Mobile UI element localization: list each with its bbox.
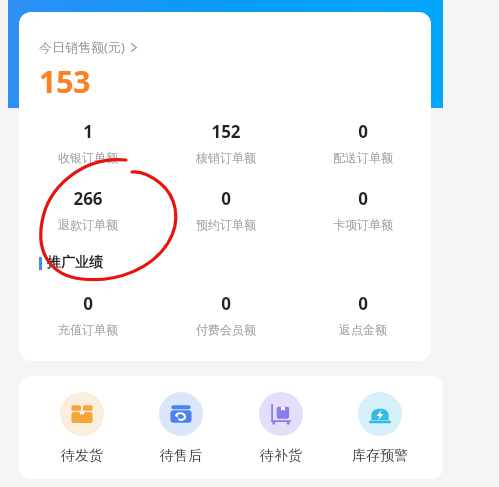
button[interactable]: 266 [19, 187, 157, 232]
button[interactable]: 0 [294, 292, 431, 337]
staticText: 待补货 [260, 447, 302, 465]
staticText: 付费会员额 [196, 322, 256, 337]
button[interactable]: 待售后 [144, 392, 218, 465]
staticText: 待售后 [160, 447, 202, 465]
staticText: 0 [221, 292, 231, 315]
button[interactable]: 152 [157, 120, 294, 165]
staticText: 0 [358, 120, 368, 143]
staticText: 预约订单额 [196, 217, 256, 232]
staticText: 卡项订单额 [333, 217, 393, 232]
staticText: 152 [211, 120, 241, 143]
staticText: 配送订单额 [333, 150, 393, 165]
staticText: 待发货 [61, 447, 103, 465]
staticText: 0 [221, 187, 231, 210]
button[interactable]: 库存预警 [343, 392, 417, 465]
button[interactable]: 推广业绩 [39, 254, 103, 272]
staticText: 推广业绩 [47, 254, 103, 272]
button[interactable]: 待发货 [45, 392, 119, 465]
button[interactable]: 待补货 [244, 392, 318, 465]
button[interactable]: 0 [157, 187, 294, 232]
staticText: 0 [358, 292, 368, 315]
button[interactable]: 0 [294, 120, 431, 165]
staticText: 1 [83, 120, 93, 143]
button[interactable]: 0 [157, 292, 294, 337]
staticText: 0 [358, 187, 368, 210]
staticText: 0 [83, 292, 93, 315]
staticText: 核销订单额 [196, 150, 256, 165]
staticText: 返点金额 [339, 322, 387, 337]
staticText: 266 [73, 187, 103, 210]
staticText: 退款订单额 [58, 217, 118, 232]
button[interactable]: 今日销售额(元) [39, 38, 138, 56]
staticText: 充值订单额 [58, 322, 118, 337]
button[interactable]: 0 [19, 292, 157, 337]
staticText: 收银订单额 [58, 150, 118, 165]
button[interactable]: 1 [19, 120, 157, 165]
staticText: 今日销售额(元) [39, 38, 125, 56]
staticText: 153 [39, 61, 91, 102]
button[interactable]: 0 [294, 187, 431, 232]
staticText: 库存预警 [352, 447, 408, 465]
